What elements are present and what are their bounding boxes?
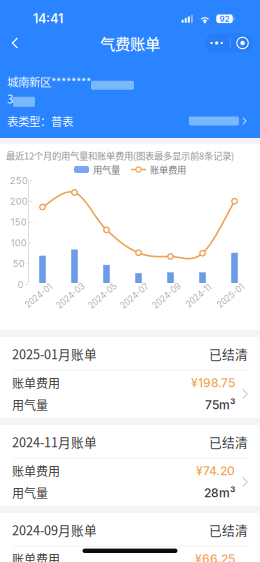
button[interactable]: 2024-11月账单: [0, 425, 260, 506]
staticText: 已结清: [209, 344, 248, 363]
button[interactable]: 返回: [0, 30, 34, 56]
staticText: 气费账单: [100, 32, 160, 54]
staticText: 2024-11: [183, 291, 213, 301]
button[interactable]: 2025-01月账单: [0, 337, 260, 418]
staticText: 75m³: [205, 398, 235, 412]
staticText: 表类型：普表: [7, 113, 73, 129]
staticText: 92: [220, 14, 230, 24]
staticText: 2024-09: [149, 291, 183, 301]
staticText: 0: [17, 279, 23, 290]
staticText: 2024-03: [53, 291, 87, 301]
staticText: 2024-09月账单: [12, 520, 97, 539]
staticText: 账单费用: [150, 163, 186, 176]
staticText: 账单费用: [12, 462, 60, 480]
staticText: 用气量: [12, 484, 48, 502]
staticText: 50: [13, 258, 25, 269]
staticText: ¥66.25: [195, 552, 235, 562]
staticText: ¥74.20: [196, 464, 235, 478]
staticText: 已结清: [209, 432, 248, 451]
staticText: 100: [11, 237, 27, 249]
staticText: 已结清: [209, 520, 248, 539]
staticText: ¥198.75: [191, 376, 235, 390]
staticText: 3: [7, 90, 13, 107]
staticText: 2025-01月账单: [12, 344, 97, 363]
staticText: 2024-11月账单: [12, 432, 97, 451]
staticText: 账单费用: [12, 374, 60, 392]
staticText: 200: [10, 196, 28, 207]
staticText: 用气量: [12, 396, 48, 414]
staticText: 14:41: [33, 11, 63, 26]
staticText: 28m³: [204, 486, 235, 500]
staticText: 用气量: [93, 163, 120, 176]
button[interactable]: 更多: [205, 33, 253, 52]
staticText: 城南新区********: [7, 73, 91, 90]
staticText: 2024-05: [85, 291, 119, 301]
staticText: 2025-01: [214, 291, 246, 301]
button[interactable]: 切换表具: [189, 114, 248, 127]
staticText: 2024-07: [117, 291, 151, 301]
button[interactable]: 2024-09月账单: [0, 513, 260, 562]
staticText: 150: [11, 216, 27, 228]
staticText: 2024-01: [22, 291, 54, 301]
staticText: 账单费用: [12, 550, 60, 562]
staticText: 250: [10, 175, 28, 186]
staticText: 最近12个月的用气量和账单费用(图表最多显示前8条记录): [6, 149, 234, 162]
